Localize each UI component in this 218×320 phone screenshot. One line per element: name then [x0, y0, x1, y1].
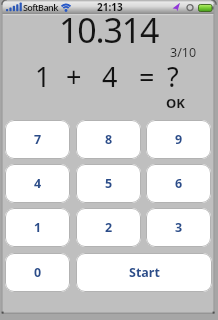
button[interactable]: Start: [76, 253, 212, 292]
staticText: 5: [105, 175, 113, 192]
staticText: 3/10: [170, 44, 197, 61]
staticText: 7: [34, 131, 42, 148]
button[interactable]: 1: [5, 208, 70, 247]
button[interactable]: 6: [146, 164, 211, 203]
staticText: 4: [102, 58, 118, 95]
staticText: 21:13: [97, 0, 123, 14]
button[interactable]: 7: [5, 120, 70, 159]
staticText: SoftBank: [23, 1, 58, 13]
staticText: Start: [129, 264, 160, 281]
staticText: 1: [35, 58, 51, 95]
button[interactable]: 0: [5, 253, 70, 292]
staticText: 4: [34, 175, 42, 192]
staticText: 1: [34, 219, 42, 236]
button[interactable]: 8: [76, 120, 141, 159]
button[interactable]: 2: [76, 208, 141, 247]
staticText: 9: [175, 131, 183, 148]
button[interactable]: 3: [146, 208, 211, 247]
staticText: +: [66, 58, 82, 95]
button[interactable]: OK: [115, 73, 214, 133]
staticText: =: [139, 58, 155, 95]
staticText: 0: [34, 264, 42, 281]
staticText: 2: [105, 219, 113, 236]
staticText: 3: [175, 219, 183, 236]
staticText: ?: [167, 58, 179, 95]
staticText: 8: [105, 131, 113, 148]
button[interactable]: 4: [5, 164, 70, 203]
staticText: OK: [166, 94, 185, 112]
staticText: 6: [175, 175, 183, 192]
staticText: 10.314: [59, 7, 159, 53]
button[interactable]: 9: [146, 120, 211, 159]
button[interactable]: 5: [76, 164, 141, 203]
